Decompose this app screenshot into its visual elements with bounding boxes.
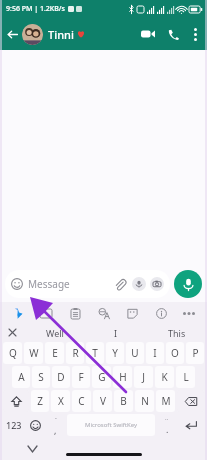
button[interactable]: Message [5, 270, 170, 298]
button[interactable]: Translate [93, 302, 115, 324]
button[interactable]: Hide keyboard [24, 441, 40, 457]
button[interactable]: Space [67, 414, 155, 436]
button[interactable]: P [186, 342, 204, 364]
staticText: Z [37, 394, 43, 408]
button[interactable]: Comma [46, 414, 64, 436]
button[interactable]: Video call [135, 18, 161, 50]
button[interactable]: Well [24, 324, 85, 341]
button[interactable]: L [176, 366, 195, 388]
button[interactable]: M [156, 390, 175, 412]
staticText: Microsoft SwiftKey [85, 421, 137, 429]
button[interactable]: Clipboard [64, 302, 86, 324]
button[interactable]: More options [185, 18, 205, 50]
button[interactable]: B [114, 390, 133, 412]
button[interactable]: H [113, 366, 132, 388]
staticText: . [166, 423, 169, 435]
staticText: L [183, 370, 189, 384]
button[interactable]: Q [3, 342, 22, 364]
button[interactable]: Attach [112, 276, 128, 292]
staticText: E [52, 346, 58, 360]
button[interactable]: Back [3, 25, 21, 43]
button[interactable]: Shift [3, 390, 29, 412]
staticText: , [54, 424, 57, 436]
staticText: Y [112, 346, 118, 360]
button[interactable]: N [135, 390, 154, 412]
button[interactable]: K [155, 366, 174, 388]
staticText: P [192, 346, 199, 360]
staticText: F [78, 370, 84, 384]
staticText: D [57, 370, 65, 384]
staticText: T [92, 346, 98, 360]
button[interactable]: Sticker [121, 302, 143, 324]
button[interactable]: A [12, 366, 30, 388]
staticText: I [153, 346, 157, 360]
button[interactable]: V [93, 390, 112, 412]
staticText: A [18, 370, 25, 384]
button[interactable]: T [86, 342, 104, 364]
staticText: Well [46, 327, 64, 339]
button[interactable]: Info [150, 302, 172, 324]
button[interactable]: X [51, 390, 70, 412]
staticText: B [120, 394, 127, 408]
staticText: G [98, 370, 106, 384]
button[interactable]: This [146, 324, 207, 341]
button[interactable]: R [66, 342, 84, 364]
staticText: Tinni [48, 27, 74, 42]
button[interactable]: U [126, 342, 144, 364]
button[interactable]: Close suggestions [0, 324, 24, 341]
staticText: W [29, 346, 39, 360]
staticText: Q [9, 346, 17, 360]
staticText: K [161, 370, 168, 384]
button[interactable]: Period [158, 414, 176, 436]
staticText: J [142, 370, 145, 384]
staticText: O [171, 346, 179, 360]
button[interactable]: O [166, 342, 184, 364]
staticText: ·· [165, 415, 169, 423]
button[interactable]: More [178, 302, 200, 324]
staticText: H [119, 370, 127, 384]
button[interactable]: D [52, 366, 70, 388]
button[interactable]: Numbers [3, 414, 24, 436]
button[interactable]: E [45, 342, 64, 364]
button[interactable]: Y [106, 342, 124, 364]
staticText: X [58, 394, 64, 408]
staticText: I [114, 327, 118, 339]
staticText: N [141, 394, 149, 408]
button[interactable]: Sticker [132, 277, 146, 291]
staticText: 9:56 PM | 1.2KB/s [6, 4, 65, 14]
button[interactable]: GIF [35, 302, 57, 324]
button[interactable]: I [146, 342, 164, 364]
staticText: U [131, 346, 139, 360]
staticText: S [38, 370, 44, 384]
staticText: R [72, 346, 79, 360]
button[interactable]: Z [31, 390, 49, 412]
button[interactable]: Voice call [161, 18, 185, 50]
staticText: This [168, 327, 186, 339]
staticText: M [161, 394, 171, 408]
staticText: C [78, 394, 85, 408]
button[interactable]: Enter [178, 414, 204, 436]
staticText: · [55, 414, 57, 424]
staticText: 123 [6, 419, 22, 431]
button[interactable]: W [24, 342, 43, 364]
button[interactable]: C [72, 390, 91, 412]
staticText: V [100, 394, 106, 408]
button[interactable]: Backspace [177, 390, 204, 412]
button[interactable]: Voice message [174, 270, 202, 298]
button[interactable]: G [92, 366, 111, 388]
button[interactable]: I [85, 324, 146, 341]
button[interactable]: Bing [7, 302, 29, 324]
button[interactable]: F [72, 366, 90, 388]
staticText: Message [28, 277, 70, 291]
button[interactable]: Emoji [26, 414, 44, 436]
button[interactable]: J [134, 366, 153, 388]
button[interactable]: Camera [150, 277, 164, 291]
button[interactable]: Tinni [22, 18, 135, 50]
button[interactable]: S [32, 366, 50, 388]
